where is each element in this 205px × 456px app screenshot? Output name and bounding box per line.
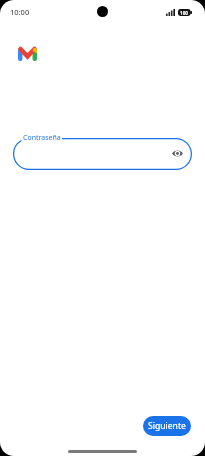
staticText: Contraseña (23, 133, 61, 143)
staticText: Siguiente (148, 420, 186, 432)
button[interactable]: Contraseña (13, 138, 192, 170)
staticText: 100 (180, 10, 188, 16)
button[interactable]: Siguiente (143, 416, 191, 436)
button[interactable]: Mostrar contraseña (168, 144, 187, 163)
staticText: 10:00 (10, 7, 30, 17)
